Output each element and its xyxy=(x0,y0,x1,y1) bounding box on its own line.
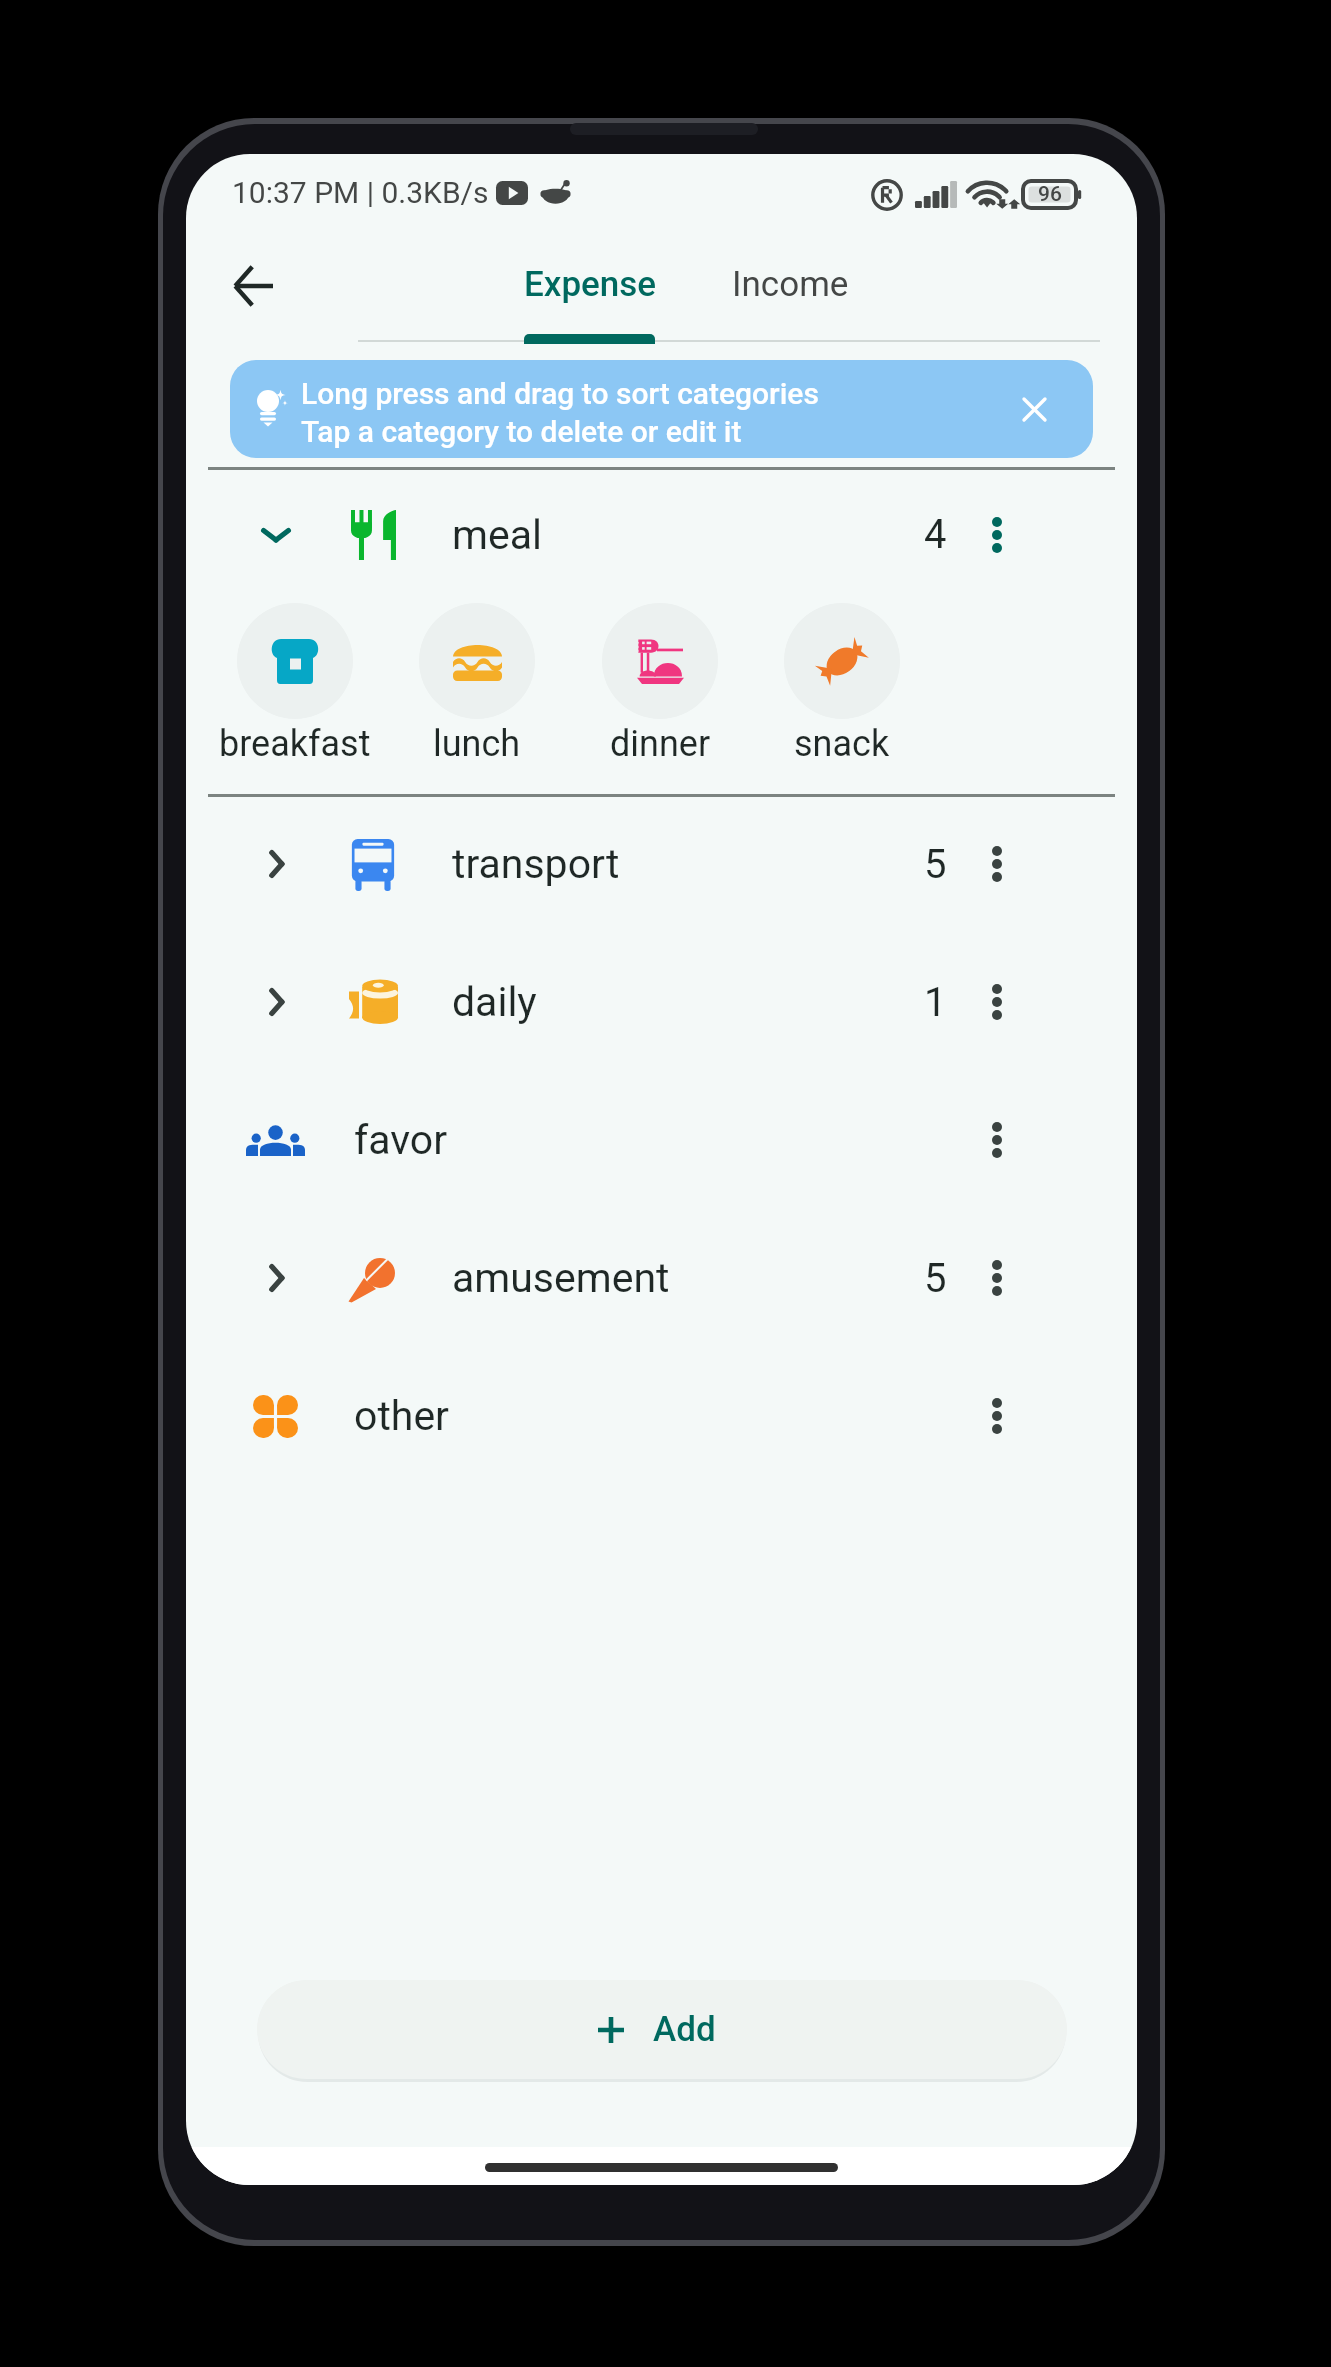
button[interactable]: More options for transport xyxy=(967,834,1027,894)
staticText: 5 xyxy=(924,1255,947,1302)
staticText: amusement xyxy=(452,1254,670,1302)
button[interactable]: Back xyxy=(221,254,284,317)
staticText: Long press and drag to sort categories xyxy=(301,376,819,411)
button[interactable]: Long press and drag to sort categories xyxy=(230,360,1093,458)
button[interactable]: lunch xyxy=(386,603,568,793)
staticText: Income xyxy=(732,264,849,305)
staticText: snack xyxy=(794,723,890,765)
button[interactable]: More options for favor xyxy=(967,1110,1027,1170)
button[interactable]: transport xyxy=(208,795,1115,933)
button[interactable]: amusement xyxy=(208,1209,1115,1347)
staticText: dinner xyxy=(610,723,711,765)
staticText: other xyxy=(354,1392,450,1440)
staticText: favor xyxy=(354,1116,448,1164)
button[interactable]: Expense xyxy=(490,246,690,322)
staticText: 4 xyxy=(924,511,947,558)
button[interactable]: other xyxy=(208,1347,1115,1485)
button[interactable]: dinner xyxy=(569,603,751,793)
staticText: transport xyxy=(452,840,620,888)
staticText: daily xyxy=(452,978,537,1026)
staticText: 10:37 PM | 0.3KB/s xyxy=(232,175,489,210)
button[interactable]: daily xyxy=(208,933,1115,1071)
staticText: 96 xyxy=(1038,182,1062,207)
staticText: Add xyxy=(653,2009,716,2050)
staticText: Expense xyxy=(524,264,657,305)
button[interactable]: Income xyxy=(690,246,890,322)
staticText: lunch xyxy=(433,723,521,765)
button[interactable]: More options for daily xyxy=(967,972,1027,1032)
button[interactable]: More options for meal xyxy=(967,505,1027,565)
button[interactable]: favor xyxy=(208,1071,1115,1209)
button[interactable]: meal xyxy=(208,468,1115,601)
staticText: 1 xyxy=(924,979,947,1026)
button[interactable]: Add xyxy=(257,1980,1067,2079)
staticText: meal xyxy=(452,511,542,559)
button[interactable]: More options for amusement xyxy=(967,1248,1027,1308)
button[interactable]: breakfast xyxy=(204,603,386,793)
button[interactable]: Dismiss hint xyxy=(1004,379,1064,439)
staticText: Tap a category to delete or edit it xyxy=(301,414,742,449)
staticText: breakfast xyxy=(219,723,371,765)
staticText: 5 xyxy=(924,841,947,888)
button[interactable]: More options for other xyxy=(967,1386,1027,1446)
button[interactable]: snack xyxy=(751,603,933,793)
